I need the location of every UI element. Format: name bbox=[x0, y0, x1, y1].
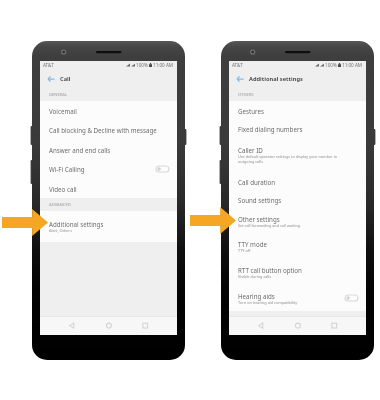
button[interactable]: Hearing aids bbox=[229, 285, 366, 311]
staticText: 11:00 AM bbox=[153, 62, 174, 68]
staticText: Video call bbox=[49, 185, 77, 193]
staticText: TTY mode bbox=[238, 240, 267, 248]
staticText: Additional settings bbox=[49, 220, 104, 228]
button[interactable]: TTY mode bbox=[229, 234, 366, 259]
button[interactable]: Gestures bbox=[229, 101, 366, 120]
button[interactable]: Wi-Fi Calling bbox=[40, 159, 177, 178]
staticText: Turn on hearing aid compatibility bbox=[238, 300, 298, 305]
staticText: Additional settings bbox=[249, 75, 303, 83]
staticText: Call bbox=[60, 75, 71, 83]
button[interactable]: Caller ID bbox=[229, 138, 366, 172]
staticText: Fixed dialing numbers bbox=[238, 125, 303, 133]
staticText: Sound settings bbox=[238, 196, 282, 204]
staticText: AT&T bbox=[232, 62, 243, 68]
staticText: 100% bbox=[325, 62, 337, 68]
staticText: GENERAL bbox=[49, 92, 68, 98]
staticText: Alert, Others bbox=[49, 228, 72, 233]
button[interactable]: Sound settings bbox=[229, 191, 366, 209]
button[interactable]: Call duration bbox=[229, 172, 366, 191]
button[interactable]: Back bbox=[229, 69, 366, 89]
staticText: Voicemail bbox=[49, 107, 77, 115]
staticText: Call duration bbox=[238, 178, 276, 186]
staticText: Set call forwarding and call waiting bbox=[238, 223, 301, 228]
staticText: OTHERS bbox=[238, 92, 254, 98]
button[interactable]: Voicemail bbox=[40, 101, 177, 120]
staticText: Wi-Fi Calling bbox=[49, 165, 85, 173]
staticText: 100% bbox=[136, 62, 148, 68]
staticText: Use default operator settings to display… bbox=[238, 154, 352, 164]
button[interactable]: Fixed dialing numbers bbox=[229, 120, 366, 138]
staticText: TTY off bbox=[238, 248, 251, 253]
staticText: ADVANCED bbox=[49, 202, 71, 208]
staticText: Gestures bbox=[238, 107, 264, 115]
staticText: Caller ID bbox=[238, 146, 263, 154]
button[interactable]: Video call bbox=[40, 179, 177, 198]
staticText: Other settings bbox=[238, 215, 280, 223]
staticText: Visible during calls bbox=[238, 274, 272, 279]
other: Back bbox=[47, 75, 55, 83]
staticText: Hearing aids bbox=[238, 292, 275, 300]
staticText: RTT call button option bbox=[238, 266, 302, 274]
button[interactable]: Other settings bbox=[229, 209, 366, 234]
staticText: 11:00 AM bbox=[342, 62, 363, 68]
staticText: AT&T bbox=[43, 62, 54, 68]
button[interactable]: Call blocking & Decline with message bbox=[40, 120, 177, 139]
button[interactable]: Back bbox=[40, 69, 177, 89]
other: Back bbox=[236, 75, 244, 83]
staticText: Call blocking & Decline with message bbox=[49, 126, 157, 134]
button[interactable]: Additional settings bbox=[40, 211, 177, 242]
button[interactable]: Answer and end calls bbox=[40, 140, 177, 159]
button[interactable]: RTT call button option bbox=[229, 259, 366, 285]
staticText: Answer and end calls bbox=[49, 146, 111, 154]
